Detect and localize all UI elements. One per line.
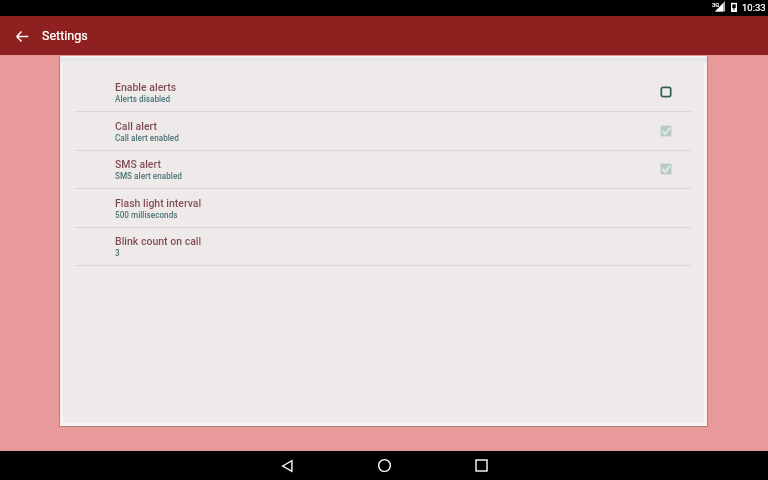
- button[interactable]: SMS alert: [60, 151, 707, 188]
- staticText: Settings: [42, 28, 88, 43]
- button[interactable]: Call alert: [60, 113, 707, 150]
- staticText: SMS alert: [115, 158, 161, 170]
- staticText: Blink count on call: [115, 235, 202, 247]
- staticText: Flash light interval: [115, 197, 202, 209]
- button[interactable]: Home: [360, 451, 408, 480]
- staticText: Alerts disabled: [115, 94, 171, 104]
- staticText: 10:33: [742, 2, 766, 13]
- button[interactable]: Blink count on call: [60, 228, 707, 265]
- staticText: SMS alert enabled: [115, 171, 182, 181]
- button[interactable]: Recent apps: [457, 451, 505, 480]
- staticText: Call alert: [115, 120, 157, 132]
- staticText: 500 milliseconds: [115, 210, 178, 220]
- button[interactable]: Back: [263, 451, 311, 480]
- button[interactable]: Back: [6, 20, 38, 52]
- button[interactable]: Enable alerts: [60, 74, 707, 111]
- button[interactable]: Flash light interval: [60, 190, 707, 227]
- staticText: 3: [115, 248, 120, 258]
- staticText: Enable alerts: [115, 81, 177, 93]
- staticText: 3G: [712, 1, 720, 8]
- staticText: Call alert enabled: [115, 133, 179, 143]
